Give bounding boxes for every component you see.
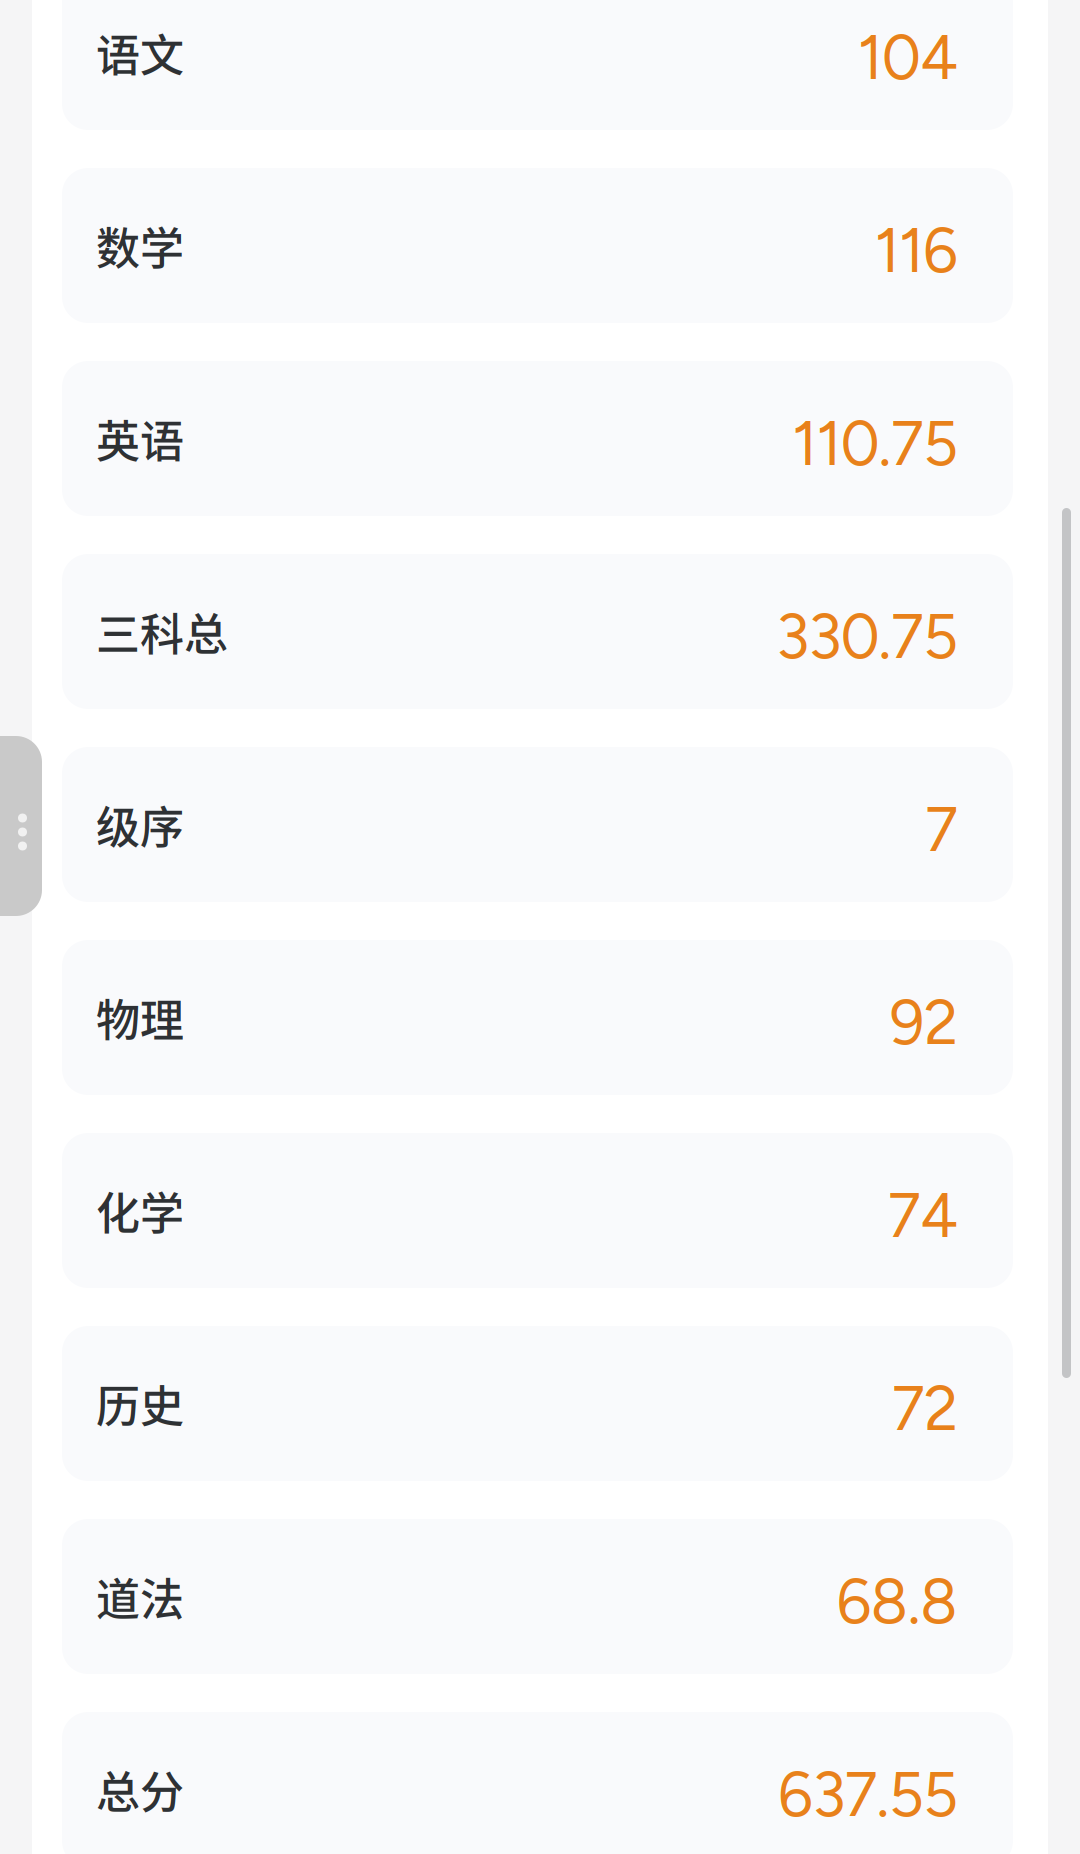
button[interactable]: 化学 [62, 1133, 1013, 1288]
staticText: 物理 [96, 986, 184, 1049]
staticText: 116 [875, 214, 958, 287]
staticText: 三科总 [96, 600, 228, 663]
button[interactable]: 历史 [62, 1326, 1013, 1481]
button[interactable]: 道法 [62, 1519, 1013, 1674]
staticText: 数学 [96, 214, 184, 277]
button[interactable]: 数学 [62, 168, 1013, 323]
button[interactable]: Assistive menu [0, 736, 42, 916]
button[interactable]: 总分 [62, 1712, 1013, 1854]
staticText: 化学 [96, 1179, 184, 1242]
staticText: 道法 [96, 1565, 184, 1628]
button[interactable]: 语文 [62, 0, 1013, 130]
staticText: 总分 [96, 1758, 184, 1821]
button[interactable]: 物理 [62, 940, 1013, 1095]
staticText: 72 [892, 1372, 958, 1445]
staticText: 330.75 [776, 600, 958, 673]
staticText: 语文 [96, 21, 184, 84]
staticText: 历史 [96, 1372, 184, 1435]
staticText: 74 [888, 1179, 958, 1252]
button[interactable]: 级序 [62, 747, 1013, 902]
staticText: 7 [925, 793, 958, 866]
button[interactable]: 英语 [62, 361, 1013, 516]
button[interactable]: 三科总 [62, 554, 1013, 709]
staticText: 92 [890, 986, 958, 1059]
staticText: 68.8 [836, 1565, 958, 1638]
staticText: 级序 [96, 793, 184, 856]
staticText: 英语 [96, 407, 184, 470]
staticText: 104 [858, 21, 958, 94]
staticText: 637.55 [778, 1758, 958, 1831]
staticText: 110.75 [792, 407, 958, 480]
